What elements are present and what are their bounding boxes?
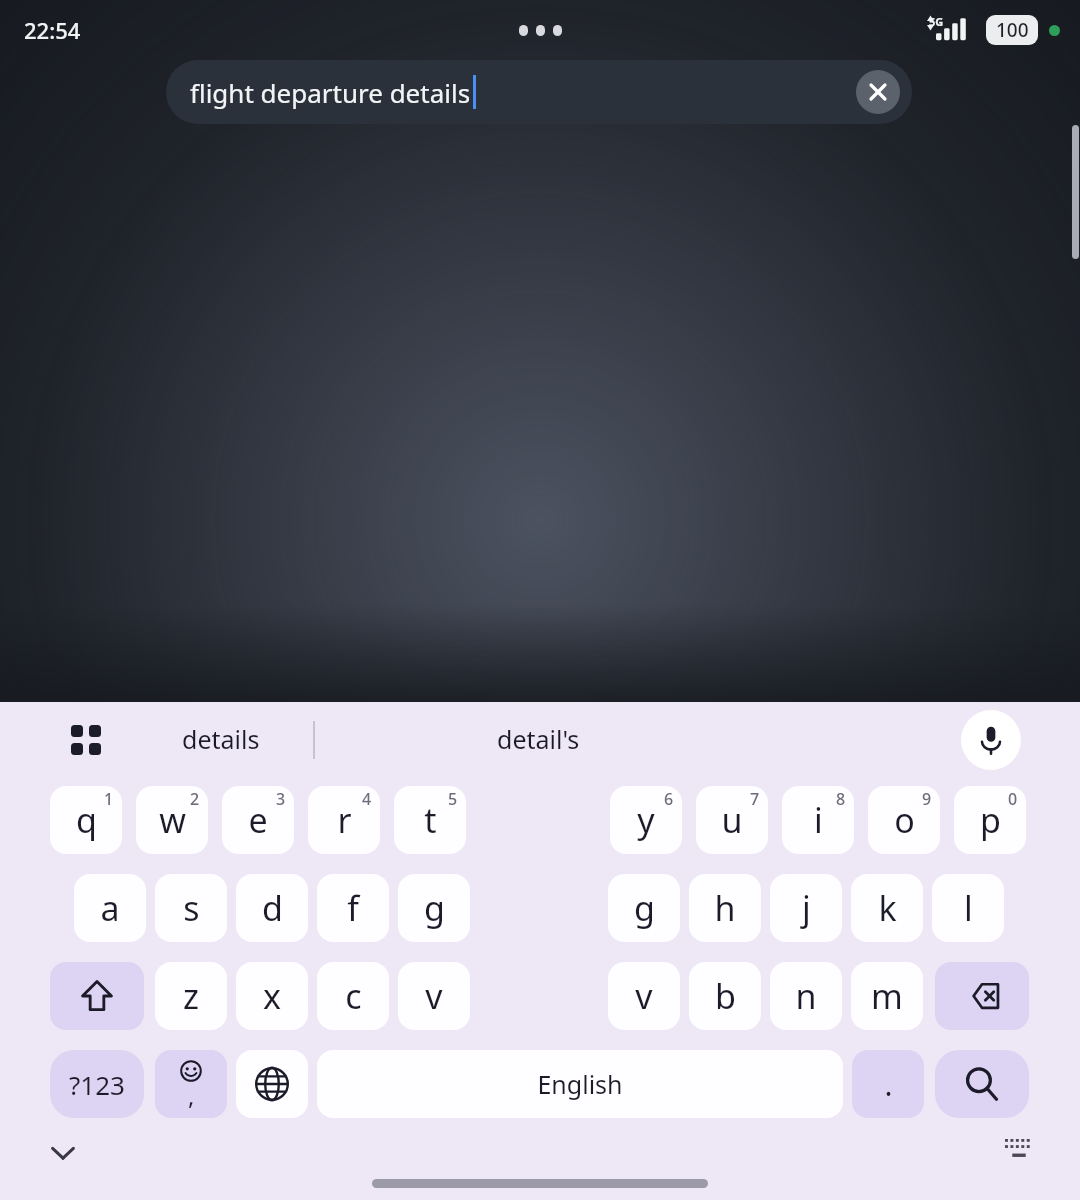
staticText: 1 (104, 788, 114, 810)
button[interactable]: Shift (50, 962, 144, 1030)
staticText: b (715, 973, 736, 1019)
staticText: 2 (190, 788, 200, 810)
staticText: 8 (836, 788, 846, 810)
button[interactable]: l (932, 874, 1004, 942)
staticText: l (964, 885, 973, 931)
staticText: 3 (276, 788, 286, 810)
staticText: u (721, 797, 743, 843)
button[interactable]: flight departure details (166, 60, 912, 124)
staticText: k (878, 885, 897, 931)
staticText: j (802, 885, 811, 931)
staticText: 0 (1008, 788, 1018, 810)
button[interactable]: d (236, 874, 308, 942)
staticText: details (182, 722, 260, 756)
button[interactable]: w (136, 786, 208, 854)
button[interactable]: detail's (430, 708, 646, 770)
button[interactable]: Emoji (155, 1050, 227, 1118)
staticText: a (100, 885, 120, 931)
staticText: d (262, 885, 283, 931)
staticText: g (424, 885, 445, 931)
staticText: w (159, 797, 186, 843)
button[interactable]: q (50, 786, 122, 854)
button[interactable]: Clear search (856, 70, 900, 114)
button[interactable]: z (155, 962, 227, 1030)
staticText: 6 (664, 788, 674, 810)
button[interactable]: Hide keyboard (36, 1126, 90, 1180)
button[interactable]: i (782, 786, 854, 854)
staticText: 9 (922, 788, 932, 810)
button[interactable]: v (608, 962, 680, 1030)
staticText: v (425, 973, 443, 1019)
button[interactable]: b (689, 962, 761, 1030)
staticText: 7 (750, 788, 760, 810)
staticText: , (188, 1079, 195, 1112)
button[interactable]: Backspace (935, 962, 1029, 1030)
staticText: m (871, 973, 903, 1019)
staticText: flight departure details (190, 75, 471, 110)
staticText: detail's (497, 722, 580, 756)
staticText: h (714, 885, 736, 931)
button[interactable]: s (155, 874, 227, 942)
button[interactable]: Voice input (961, 710, 1021, 770)
staticText: n (795, 973, 817, 1019)
button[interactable]: e (222, 786, 294, 854)
staticText: z (183, 973, 199, 1019)
button[interactable]: u (696, 786, 768, 854)
staticText: 100 (996, 17, 1029, 43)
button[interactable]: ?123 (50, 1050, 144, 1118)
button[interactable]: j (770, 874, 842, 942)
button[interactable]: c (317, 962, 389, 1030)
button[interactable]: y (610, 786, 682, 854)
button[interactable]: o (868, 786, 940, 854)
button[interactable]: g (608, 874, 680, 942)
staticText: q (76, 797, 97, 843)
button[interactable]: details (130, 708, 312, 770)
staticText: i (814, 797, 823, 843)
staticText: g (634, 885, 655, 931)
button[interactable]: v (398, 962, 470, 1030)
staticText: y (637, 797, 655, 843)
button[interactable]: m (851, 962, 923, 1030)
button[interactable]: k (851, 874, 923, 942)
staticText: f (347, 885, 359, 931)
button[interactable]: a (74, 874, 146, 942)
button[interactable]: Change language (236, 1050, 308, 1118)
staticText: r (337, 797, 352, 843)
staticText: s (183, 885, 200, 931)
staticText: 5 (448, 788, 458, 810)
button[interactable]: g (398, 874, 470, 942)
button[interactable]: Switch input method (992, 1126, 1046, 1180)
staticText: v (635, 973, 653, 1019)
staticText: English (537, 1067, 623, 1101)
button[interactable]: Keyboard settings (62, 716, 110, 764)
staticText: ?123 (69, 1067, 125, 1102)
staticText: 22:54 (24, 15, 81, 45)
button[interactable]: n (770, 962, 842, 1030)
staticText: 4 (362, 788, 372, 810)
button[interactable]: x (236, 962, 308, 1030)
staticText: x (263, 973, 281, 1019)
staticText: e (248, 797, 268, 843)
button[interactable]: h (689, 874, 761, 942)
button[interactable]: English (317, 1050, 843, 1118)
staticText: c (345, 973, 362, 1019)
staticText: o (894, 797, 915, 843)
button[interactable]: Search (935, 1050, 1029, 1118)
button[interactable]: f (317, 874, 389, 942)
staticText: t (424, 797, 437, 843)
staticText: . (884, 1064, 893, 1105)
button[interactable]: . (852, 1050, 924, 1118)
button[interactable]: t (394, 786, 466, 854)
staticText: 5G (929, 14, 944, 29)
staticText: p (980, 797, 1001, 843)
button[interactable]: r (308, 786, 380, 854)
button[interactable]: p (954, 786, 1026, 854)
